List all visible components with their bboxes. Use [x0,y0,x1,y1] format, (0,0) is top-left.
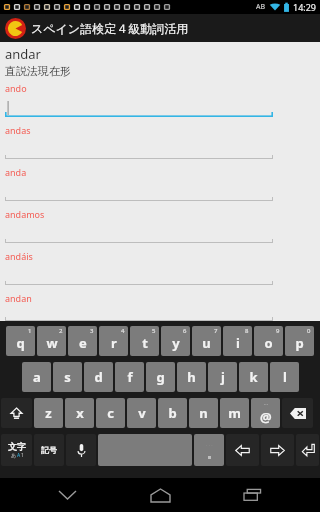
button[interactable]: c [96,398,125,428]
staticText: w [46,334,58,352]
staticText: e [79,334,87,352]
button[interactable]: g [146,362,175,392]
staticText: m [228,404,241,422]
button[interactable]: h [177,362,206,392]
staticText: 9 [276,327,280,335]
staticText: 0 [307,327,311,335]
staticText: スペイン語検定４級動詞活用 [31,21,189,36]
button[interactable] [5,224,273,243]
button[interactable]: Voice input [66,434,96,466]
button[interactable]: 6 [161,326,190,356]
button[interactable]: Move left [226,434,259,466]
button[interactable]: 8 [223,326,252,356]
button[interactable]: At sign [251,398,280,428]
staticText: andar [5,45,41,63]
button[interactable]: b [158,398,187,428]
button[interactable]: 4 [99,326,128,356]
staticText: n [199,404,208,422]
staticText: ando [5,82,27,94]
staticText: 6 [183,327,187,335]
staticText: r [111,334,117,352]
staticText: j [221,368,225,386]
staticText: andas [5,124,31,136]
button[interactable]: j [208,362,237,392]
staticText: @ [260,408,272,426]
staticText: 1 [21,452,24,459]
button[interactable] [5,308,273,321]
button[interactable]: Input mode [1,434,32,466]
staticText: A [17,452,21,459]
staticText: x [76,404,84,422]
button[interactable]: Period [194,434,224,466]
staticText: 14:29 [293,1,317,13]
staticText: ··· [264,401,269,408]
button[interactable] [5,182,273,201]
staticText: z [45,404,52,422]
staticText: f [127,368,133,386]
staticText: s [64,368,71,386]
button[interactable]: Symbols [34,434,64,466]
button[interactable]: 3 [68,326,97,356]
staticText: andan [5,292,32,304]
staticText: y [172,334,180,352]
button[interactable]: Back [41,478,93,512]
button[interactable]: 1 [6,326,35,356]
staticText: 3 [90,327,94,335]
button[interactable]: 5 [130,326,159,356]
staticText: t [142,334,148,352]
button[interactable]: Enter [296,434,319,466]
button[interactable]: v [127,398,156,428]
button[interactable]: Recent apps [227,478,279,512]
button[interactable]: 9 [254,326,283,356]
button[interactable]: l [270,362,299,392]
button[interactable]: Move right [261,434,294,466]
staticText: l [283,368,287,386]
staticText: g [156,368,165,386]
button[interactable]: x [65,398,94,428]
staticText: u [202,334,211,352]
button[interactable]: k [239,362,268,392]
button[interactable] [5,98,273,117]
button[interactable]: 2 [37,326,66,356]
button[interactable]: s [53,362,82,392]
button[interactable]: f [115,362,144,392]
staticText: あ [11,452,17,458]
staticText: i [236,334,240,352]
staticText: o [264,334,273,352]
staticText: 1 [28,327,32,335]
button[interactable]: z [34,398,63,428]
staticText: 2 [59,327,63,335]
staticText: d [94,368,103,386]
button[interactable]: m [220,398,249,428]
staticText: 記号 [41,445,57,455]
button[interactable]: Shift [1,398,32,428]
button[interactable]: n [189,398,218,428]
staticText: v [138,404,146,422]
staticText: 4 [121,327,125,335]
staticText: a [33,368,41,386]
staticText: b [168,404,177,422]
staticText: k [249,368,258,386]
button[interactable]: 7 [192,326,221,356]
staticText: 文字 [8,441,26,452]
staticText: 8 [245,327,249,335]
staticText: 直説法現在形 [5,64,71,78]
staticText: 7 [214,327,218,335]
button[interactable] [5,140,273,159]
staticText: c [107,404,114,422]
button[interactable]: a [22,362,51,392]
staticText: andamos [5,208,45,220]
button[interactable] [5,266,273,285]
staticText: p [295,334,304,352]
staticText: h [187,368,196,386]
staticText: AB [256,2,266,12]
button[interactable]: Backspace [282,398,313,428]
button[interactable]: Home [134,478,186,512]
button[interactable]: d [84,362,113,392]
staticText: 5 [152,327,156,335]
button[interactable]: 0 [285,326,314,356]
staticText: q [16,334,25,352]
staticText: andáis [5,250,33,262]
